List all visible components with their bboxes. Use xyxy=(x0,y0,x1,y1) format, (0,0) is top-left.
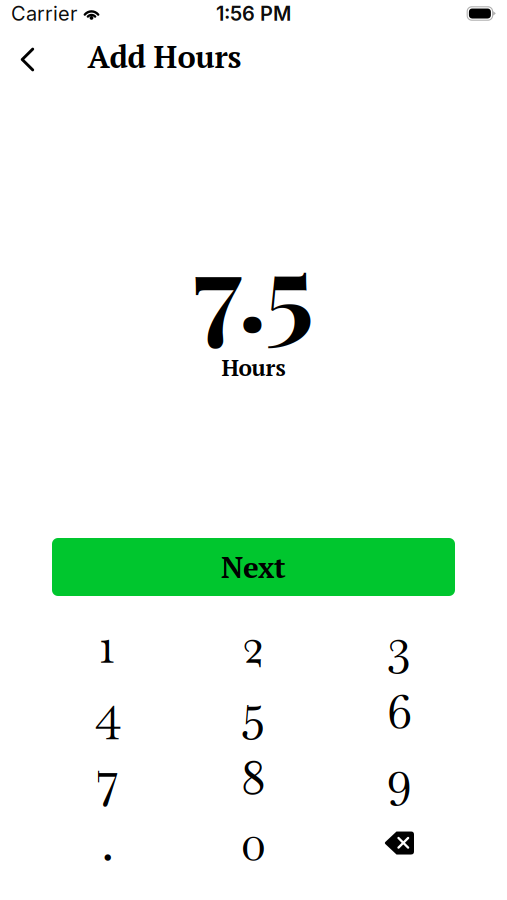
staticText: Add Hours xyxy=(87,36,241,77)
button[interactable]: Next xyxy=(52,538,455,596)
staticText: 3 xyxy=(388,612,411,678)
button[interactable]: 1 xyxy=(34,612,180,678)
staticText: 6 xyxy=(387,678,412,744)
staticText: Next xyxy=(221,548,286,586)
staticText: 7 xyxy=(96,744,118,810)
button[interactable]: 2 xyxy=(180,612,326,678)
button[interactable]: 7 xyxy=(34,744,180,810)
staticText: 8 xyxy=(241,744,266,810)
button[interactable]: . xyxy=(34,810,180,876)
button[interactable]: 4 xyxy=(34,678,180,744)
staticText: 5 xyxy=(241,678,265,744)
button[interactable]: 5 xyxy=(180,678,326,744)
button[interactable]: 8 xyxy=(180,744,326,810)
staticText: 4 xyxy=(93,678,121,744)
staticText: 1:56 PM xyxy=(216,1,291,26)
staticText: Hours xyxy=(221,352,285,382)
staticText: Carrier xyxy=(11,1,77,26)
staticText: 1 xyxy=(99,612,115,678)
button[interactable]: 0 xyxy=(180,810,326,876)
staticText: 7.5 xyxy=(193,217,314,359)
staticText: 0 xyxy=(241,810,266,876)
button[interactable]: 9 xyxy=(326,744,472,810)
button[interactable]: 3 xyxy=(326,612,472,678)
button[interactable]: Delete xyxy=(326,810,472,876)
staticText: 9 xyxy=(387,744,412,810)
staticText: . xyxy=(101,810,113,876)
staticText: 2 xyxy=(242,612,264,678)
button[interactable]: Back xyxy=(0,36,54,82)
button[interactable]: 6 xyxy=(326,678,472,744)
